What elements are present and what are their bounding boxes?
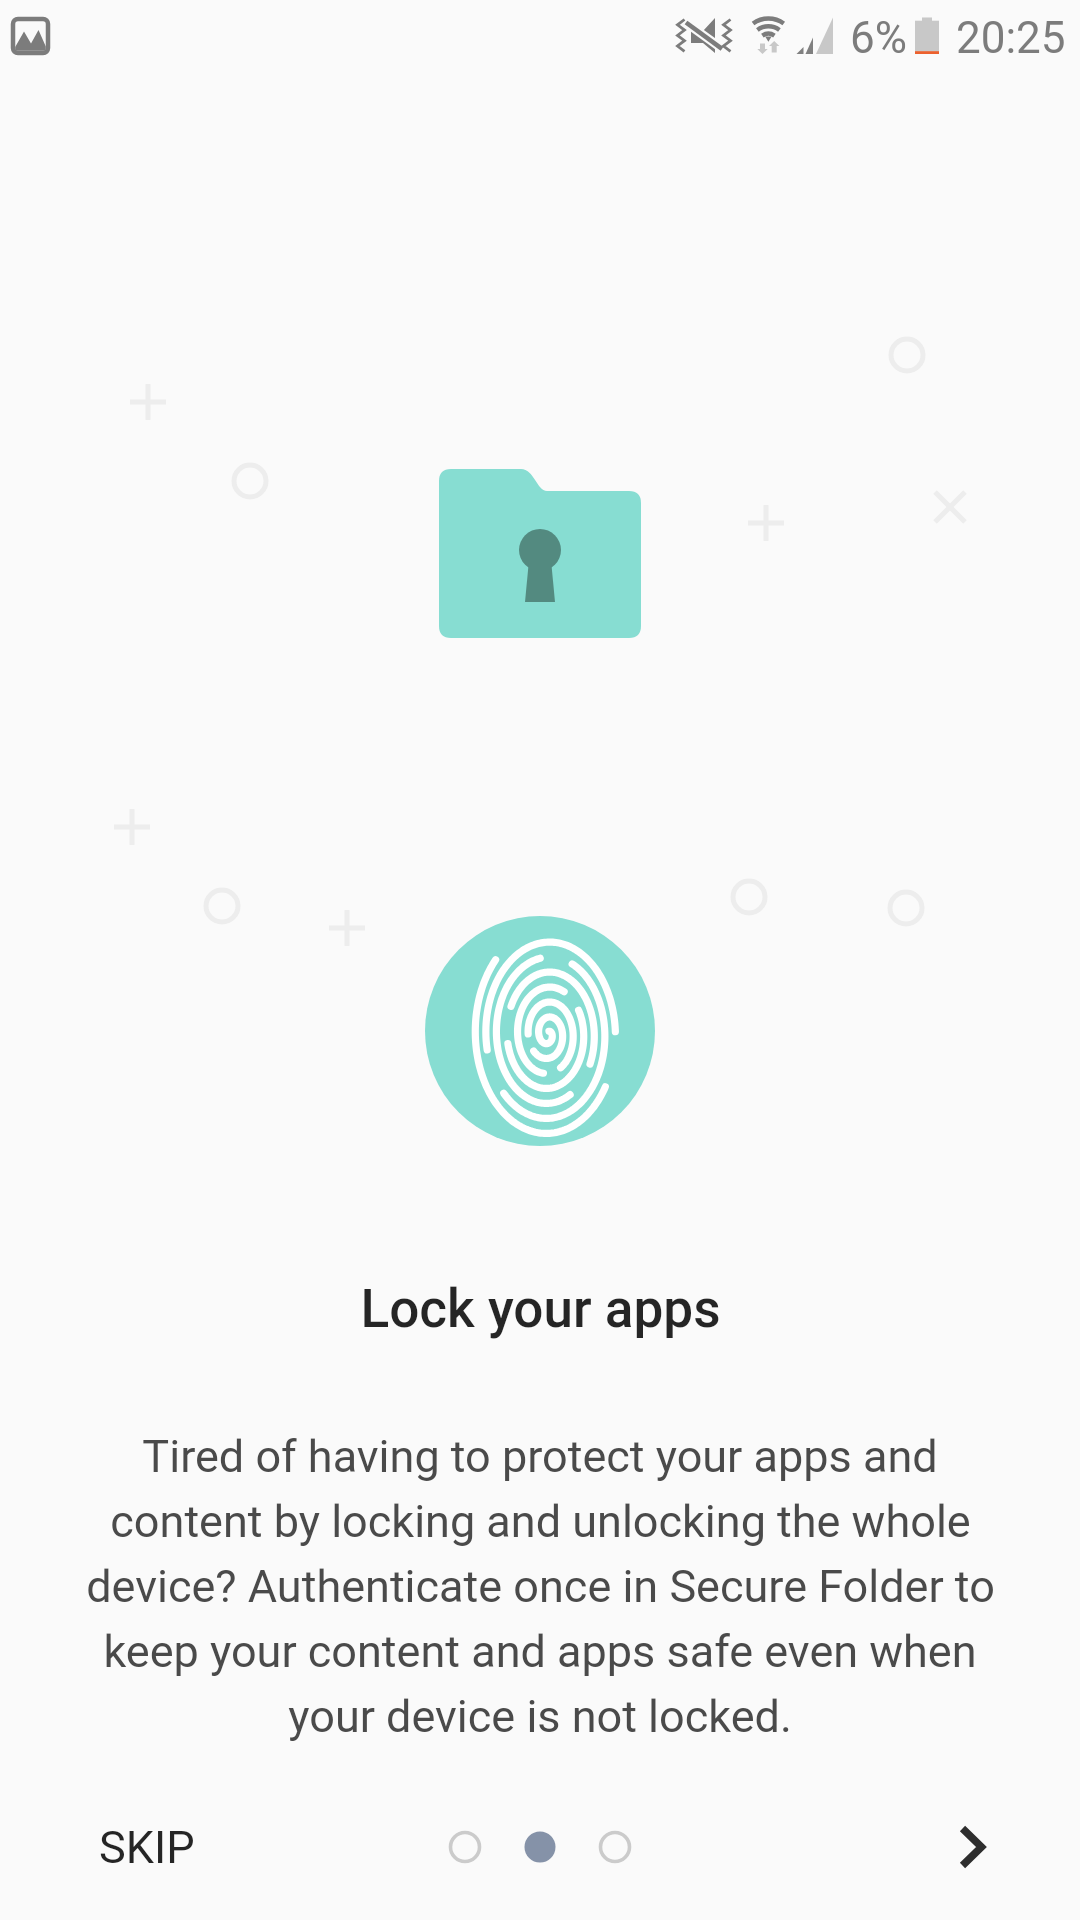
staticText: SKIP <box>99 1821 195 1874</box>
button[interactable]: SKIP <box>99 1821 195 1874</box>
staticText: your device is not locked. <box>288 1690 792 1743</box>
staticText: content by locking and unlocking the who… <box>110 1495 971 1548</box>
staticText: Tired of having to protect your apps and <box>142 1430 938 1483</box>
staticText: 6% <box>850 12 907 64</box>
staticText: 20:25 <box>956 12 1066 64</box>
staticText: Lock your apps <box>360 1278 721 1340</box>
staticText: device? Authenticate once in Secure Fold… <box>86 1560 995 1613</box>
staticText: keep your content and apps safe even whe… <box>103 1625 977 1678</box>
button[interactable]: Next <box>920 1795 1024 1899</box>
